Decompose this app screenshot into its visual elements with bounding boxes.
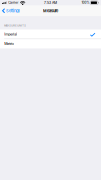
staticText: Measure <box>43 8 58 13</box>
button[interactable]: Imperial <box>0 29 101 39</box>
staticText: 7:53 AM <box>44 1 57 5</box>
staticText: Carrier <box>8 1 18 5</box>
staticText: MEASURE UNITS <box>4 24 26 27</box>
staticText: 100% <box>81 1 89 5</box>
button[interactable]: Settings <box>0 7 20 15</box>
staticText: Metric <box>4 42 14 46</box>
staticText: Settings <box>6 8 20 13</box>
button[interactable]: Metric <box>0 39 101 48</box>
staticText: Imperial <box>4 32 17 36</box>
